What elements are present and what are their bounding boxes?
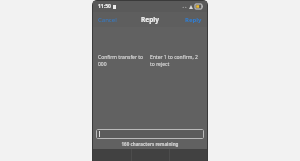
staticText: Enter 1 to confirm, 2 to reject — [150, 54, 202, 68]
staticText: 160 characters remaining — [96, 141, 204, 147]
staticText: Reply — [185, 16, 202, 24]
button[interactable]: Enter 1 to confirm, 2 to reject — [150, 54, 202, 68]
button[interactable]: Confirm transfer to 000 — [98, 54, 150, 68]
staticText: Confirm transfer to 000 — [98, 54, 147, 68]
staticText: 11:50 — [98, 3, 111, 10]
staticText: Reply — [141, 15, 159, 24]
button[interactable]: Cancel — [93, 14, 122, 26]
button[interactable] — [96, 129, 204, 139]
button[interactable]: Reply — [180, 14, 207, 26]
staticText: Cancel — [98, 16, 117, 24]
